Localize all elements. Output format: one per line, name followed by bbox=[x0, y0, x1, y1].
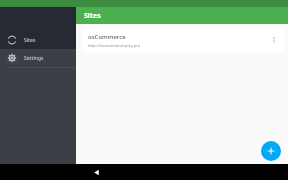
staticText: Settings bbox=[24, 55, 44, 62]
button[interactable]: Add site bbox=[261, 141, 281, 161]
staticText: Sites bbox=[24, 37, 36, 44]
button[interactable]: Sites bbox=[0, 31, 76, 49]
button[interactable]: More options bbox=[266, 32, 282, 48]
button[interactable]: Back bbox=[88, 164, 104, 180]
staticText: Sites bbox=[84, 11, 101, 21]
staticText: osCommerce bbox=[88, 33, 126, 41]
button[interactable]: osCommerce bbox=[82, 28, 284, 52]
button[interactable]: Settings bbox=[0, 49, 76, 67]
staticText: http://oscommerce.pixy.pro bbox=[88, 43, 141, 48]
